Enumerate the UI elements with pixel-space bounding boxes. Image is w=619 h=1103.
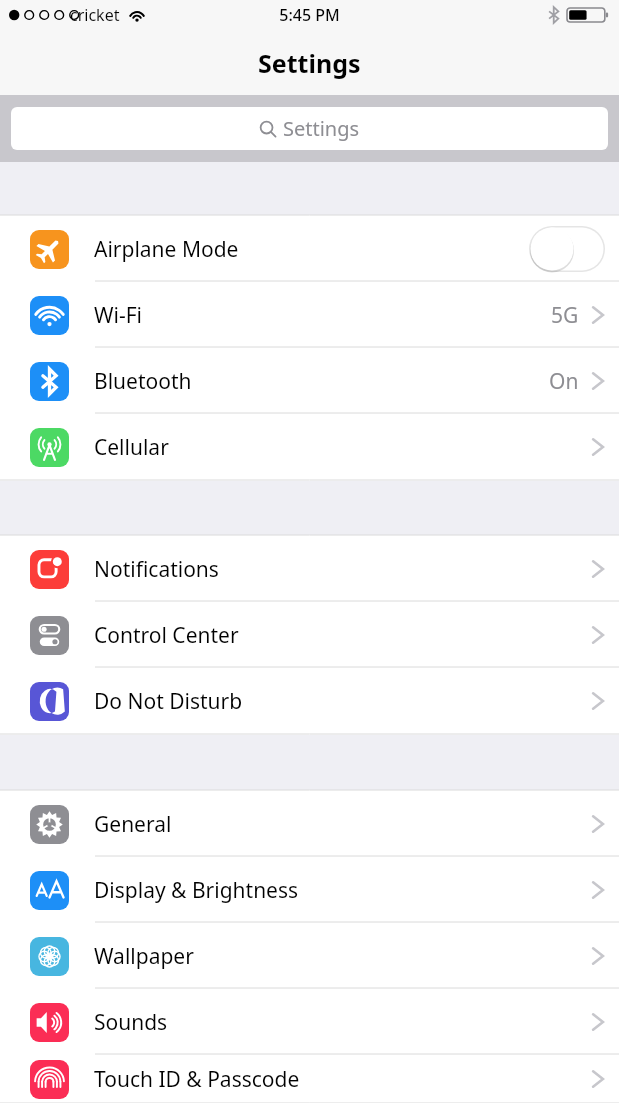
- button[interactable]: Search Settings: [11, 107, 608, 150]
- button[interactable]: Touch ID & Passcode: [0, 1055, 619, 1103]
- staticText: Control Center: [94, 621, 239, 650]
- staticText: Settings: [258, 46, 361, 80]
- staticText: 5:45 PM: [279, 4, 340, 26]
- button[interactable]: Do Not Disturb: [0, 668, 619, 734]
- button[interactable]: General: [0, 791, 619, 857]
- button[interactable]: Wi-Fi: [0, 282, 619, 348]
- staticText: Cellular: [94, 433, 169, 462]
- button[interactable]: Bluetooth: [0, 348, 619, 414]
- staticText: 5G: [551, 301, 579, 330]
- button[interactable]: Sounds: [0, 989, 619, 1055]
- staticText: On: [549, 367, 579, 396]
- staticText: Wi-Fi: [94, 301, 143, 330]
- button[interactable]: Control Center: [0, 602, 619, 668]
- staticText: Wallpaper: [94, 942, 194, 971]
- staticText: Airplane Mode: [94, 235, 239, 264]
- button[interactable]: Airplane Mode: [0, 216, 619, 282]
- staticText: cricket: [70, 4, 120, 26]
- staticText: Bluetooth: [94, 367, 192, 396]
- staticText: Do Not Disturb: [94, 687, 243, 716]
- staticText: Settings: [283, 115, 360, 142]
- button[interactable]: Wallpaper: [0, 923, 619, 989]
- button[interactable]: Cellular: [0, 414, 619, 480]
- staticText: Touch ID & Passcode: [94, 1065, 300, 1094]
- button[interactable]: Notifications: [0, 536, 619, 602]
- staticText: General: [94, 810, 172, 839]
- staticText: Notifications: [94, 555, 219, 584]
- staticText: Sounds: [94, 1008, 168, 1037]
- staticText: Display & Brightness: [94, 876, 299, 905]
- button[interactable]: Display & Brightness: [0, 857, 619, 923]
